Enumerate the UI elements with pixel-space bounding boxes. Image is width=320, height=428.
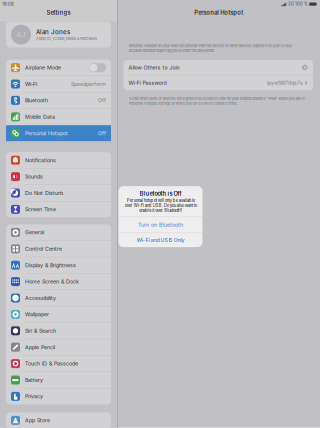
staticText: Display & Brightness	[25, 262, 76, 268]
button[interactable]: General	[6, 224, 111, 240]
staticText: Control Centre	[25, 246, 62, 252]
staticText: Apple ID, iCloud, Media & Purchases	[36, 36, 97, 41]
staticText: Speedperform	[71, 81, 106, 87]
button[interactable]: Accessibility	[6, 290, 111, 306]
staticText: Accessibility	[25, 295, 56, 301]
staticText: Alan Jones	[36, 28, 70, 36]
button[interactable]: Bluetooth	[6, 92, 111, 108]
staticText: Notifications	[25, 157, 56, 163]
staticText: Do Not Disturb	[25, 190, 63, 196]
button[interactable]: Apple Pencil	[6, 339, 111, 355]
button[interactable]: Siri & Search	[6, 323, 111, 339]
button[interactable]: App Store	[6, 412, 111, 428]
button[interactable]: Wi-Fi	[6, 76, 111, 92]
staticText: Turn on Bluetooth	[138, 221, 183, 228]
staticText: Wi-Fi Password	[129, 80, 167, 86]
staticText: Battery	[25, 377, 43, 383]
button[interactable]: Airplane Mode	[6, 60, 111, 76]
staticText: Bluetooth is Off	[139, 190, 181, 197]
staticText: Bluetooth	[25, 97, 48, 104]
button[interactable]: Screen Time	[6, 201, 111, 217]
staticText: 100 %	[295, 2, 308, 7]
button[interactable]: Display & Brightness	[6, 257, 111, 273]
button[interactable]: Turn on Bluetooth	[118, 217, 202, 233]
button[interactable]: Do Not Disturb	[6, 185, 111, 201]
staticText: ipyw5l870qs7s	[267, 80, 303, 86]
button[interactable]: Control Centre	[6, 241, 111, 257]
button[interactable]: Wallpaper	[6, 306, 111, 322]
button[interactable]: Touch ID & Passcode	[6, 356, 111, 372]
staticText: Personal hotspot will only be available …	[124, 198, 196, 213]
staticText: Wi-Fi and USB Only	[136, 237, 184, 243]
staticText: Airplane Mode	[25, 64, 61, 71]
button[interactable]: Personal Hotspot	[6, 125, 111, 141]
staticText: Personal Hotspot	[25, 130, 68, 136]
staticText: Wallpaper	[25, 311, 49, 318]
button[interactable]: Wi-Fi Password	[124, 75, 313, 90]
staticText: Off	[98, 130, 106, 136]
staticText: Home Screen & Dock	[25, 278, 79, 285]
staticText: Apple Pencil	[25, 344, 55, 350]
staticText: Personal Hotspot	[194, 9, 243, 16]
button[interactable]: AJ	[6, 22, 111, 48]
staticText: General	[25, 229, 44, 236]
staticText: Off	[98, 97, 106, 104]
button[interactable]: Wi-Fi and USB Only	[118, 233, 202, 247]
button[interactable]: Allow Others to Join	[124, 60, 313, 75]
staticText: Screen Time	[25, 206, 56, 213]
staticText: AJ	[16, 31, 25, 39]
staticText: Touch ID & Passcode	[25, 360, 78, 367]
staticText: Siri & Search	[25, 328, 56, 334]
staticText: Mobile Data	[25, 114, 55, 120]
staticText: 3G	[288, 2, 294, 7]
button[interactable]: Privacy	[6, 388, 111, 404]
button[interactable]: Mobile Data	[6, 109, 111, 125]
staticText: Settings	[46, 9, 70, 16]
button[interactable]: Sounds	[6, 169, 111, 185]
staticText: Allow other users or devices not signed …	[129, 96, 305, 106]
staticText: Personal Hotspot on your iPad can provid…	[129, 44, 292, 53]
staticText: Allow Others to Join	[129, 64, 180, 71]
staticText: Privacy	[25, 393, 43, 400]
staticText: App Store	[25, 417, 50, 424]
button[interactable]: Battery	[6, 372, 111, 388]
staticText: 18:08	[2, 1, 14, 7]
button[interactable]: Home Screen & Dock	[6, 274, 111, 290]
staticText: Wi-Fi	[25, 81, 37, 87]
staticText: Sounds	[25, 173, 43, 180]
button[interactable]: Notifications	[6, 152, 111, 168]
